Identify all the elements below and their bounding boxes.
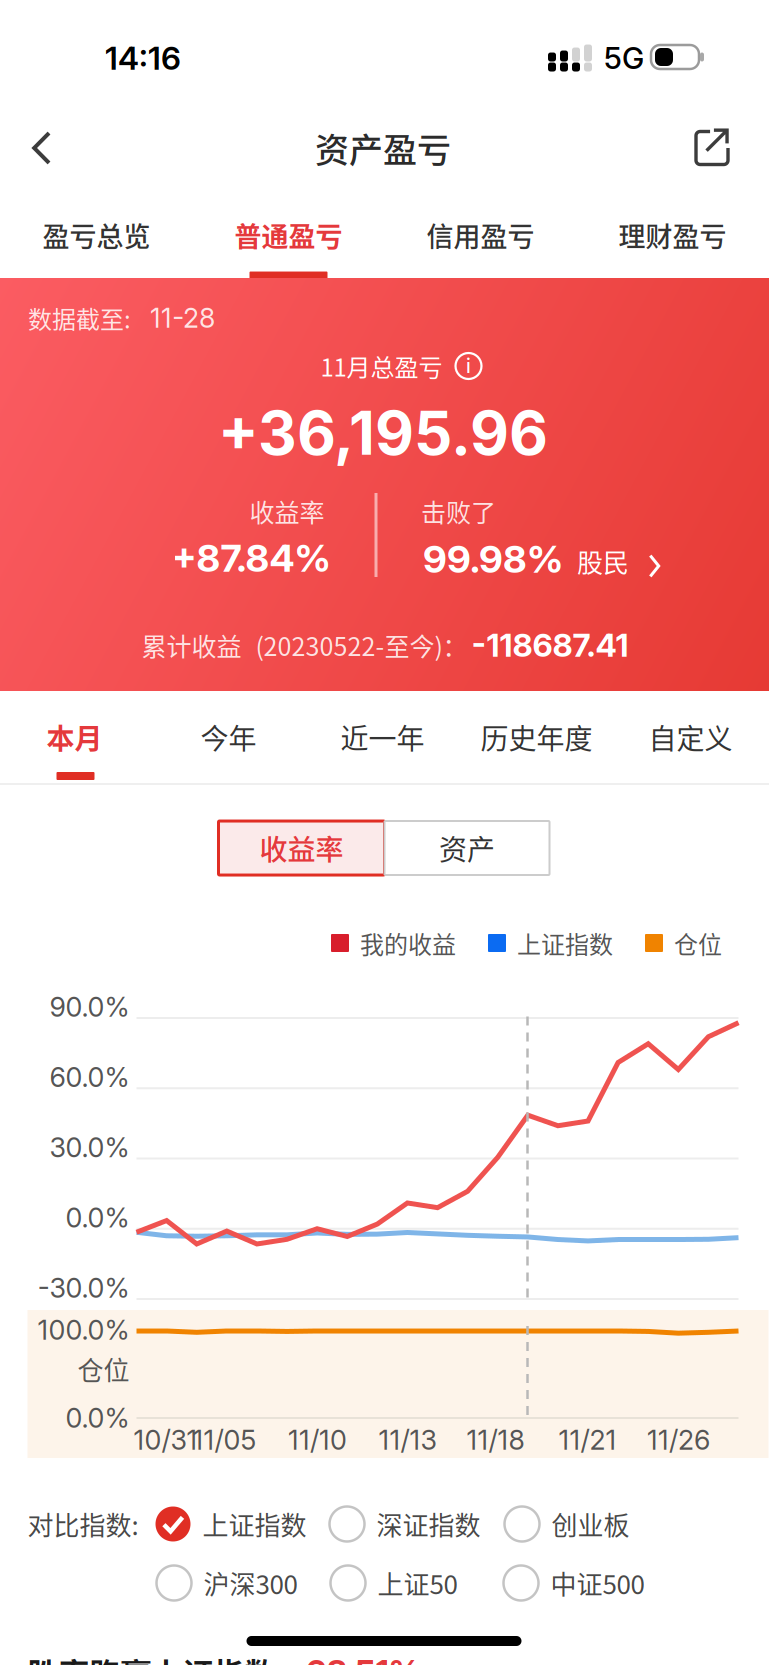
staticText: 上证50 — [377, 1564, 457, 1602]
staticText: 68.51% — [305, 1652, 420, 1665]
staticText: 数据截至: — [28, 301, 131, 335]
staticText: 11/21 — [558, 1424, 616, 1456]
staticText: 本月 — [46, 717, 102, 757]
staticText: 资产 — [439, 828, 495, 868]
staticText: 资产盈亏 — [315, 123, 451, 173]
staticText: 11/13 — [378, 1424, 436, 1456]
staticText: 收益率 — [249, 493, 324, 529]
staticText: 股民 — [577, 542, 629, 580]
staticText: 11月总盈亏 — [320, 349, 442, 383]
button[interactable]: 沪深300 — [156, 1560, 376, 1606]
staticText: 仓位 — [77, 1350, 129, 1388]
staticText: 沪深300 — [203, 1564, 297, 1602]
staticText: 对比指数: — [27, 1505, 138, 1543]
button[interactable]: 创业板 — [504, 1501, 724, 1547]
staticText: 我的收益 — [360, 926, 456, 960]
staticText: 90.0% — [49, 991, 129, 1023]
staticText: 击败了 — [421, 493, 496, 529]
staticText: 11-28 — [150, 302, 215, 334]
button[interactable]: 信用盈亏 — [384, 195, 576, 278]
staticText: -118687.41 — [471, 626, 628, 664]
staticText: 11/18 — [466, 1424, 524, 1456]
button[interactable]: 近一年 — [307, 691, 461, 785]
staticText: 11/26 — [647, 1424, 710, 1456]
staticText: 0.0% — [65, 1201, 129, 1234]
staticText: 近一年 — [340, 717, 424, 757]
staticText: 14:16 — [105, 39, 181, 77]
button[interactable]: 历史年度 — [461, 691, 615, 785]
staticText: 历史年度 — [480, 717, 592, 757]
staticText: 创业板 — [551, 1505, 629, 1543]
staticText: 11/10 — [288, 1424, 347, 1456]
staticText: 0.0% — [65, 1402, 129, 1434]
staticText: +36,195.96 — [218, 397, 548, 469]
staticText: 今年 — [200, 717, 256, 757]
button[interactable]: 资产 — [384, 821, 549, 875]
staticText: 自定义 — [648, 717, 732, 757]
staticText: -30.0% — [37, 1272, 129, 1304]
button[interactable]: 本月 — [0, 691, 153, 785]
button[interactable]: 返回 — [1, 108, 81, 188]
staticText: 100.0% — [37, 1314, 129, 1346]
staticText: 普通盈亏 — [234, 215, 342, 254]
staticText: 5G — [604, 40, 644, 76]
staticText: 中证500 — [550, 1564, 644, 1602]
staticText: 仓位 — [674, 926, 722, 960]
staticText: 上证指数 — [517, 926, 613, 960]
button[interactable]: 普通盈亏 — [192, 195, 384, 278]
button[interactable]: 中证500 — [503, 1560, 723, 1606]
button[interactable]: 分享 — [672, 108, 752, 188]
staticText: 30.0% — [49, 1131, 129, 1164]
staticText: 胜率跑赢上证指数 — [27, 1650, 275, 1665]
staticText: (20230522-至今)： — [255, 627, 467, 663]
button[interactable]: 今年 — [153, 691, 307, 785]
staticText: 信用盈亏 — [426, 215, 534, 254]
staticText: 11/05 — [192, 1424, 256, 1456]
staticText: 99.98% — [423, 536, 563, 582]
staticText: 累计收益 — [141, 627, 241, 663]
button[interactable]: 自定义 — [615, 691, 769, 785]
staticText: +87.84% — [171, 535, 330, 581]
staticText: 深证指数 — [376, 1505, 480, 1543]
staticText: 10/31 — [133, 1424, 197, 1456]
button[interactable]: 盈亏总览 — [0, 195, 192, 278]
button[interactable]: 收益率 — [218, 821, 384, 875]
button[interactable]: 深证指数 — [329, 1501, 549, 1547]
button[interactable]: 上证指数 — [155, 1501, 375, 1547]
staticText: 60.0% — [49, 1061, 129, 1094]
button[interactable]: 理财盈亏 — [576, 195, 768, 278]
staticText: 上证指数 — [202, 1505, 306, 1543]
staticText: i — [466, 354, 471, 377]
button[interactable]: 上证50 — [330, 1560, 550, 1606]
staticText: 理财盈亏 — [618, 215, 726, 254]
staticText: 盈亏总览 — [42, 215, 150, 254]
staticText: 收益率 — [259, 828, 343, 868]
